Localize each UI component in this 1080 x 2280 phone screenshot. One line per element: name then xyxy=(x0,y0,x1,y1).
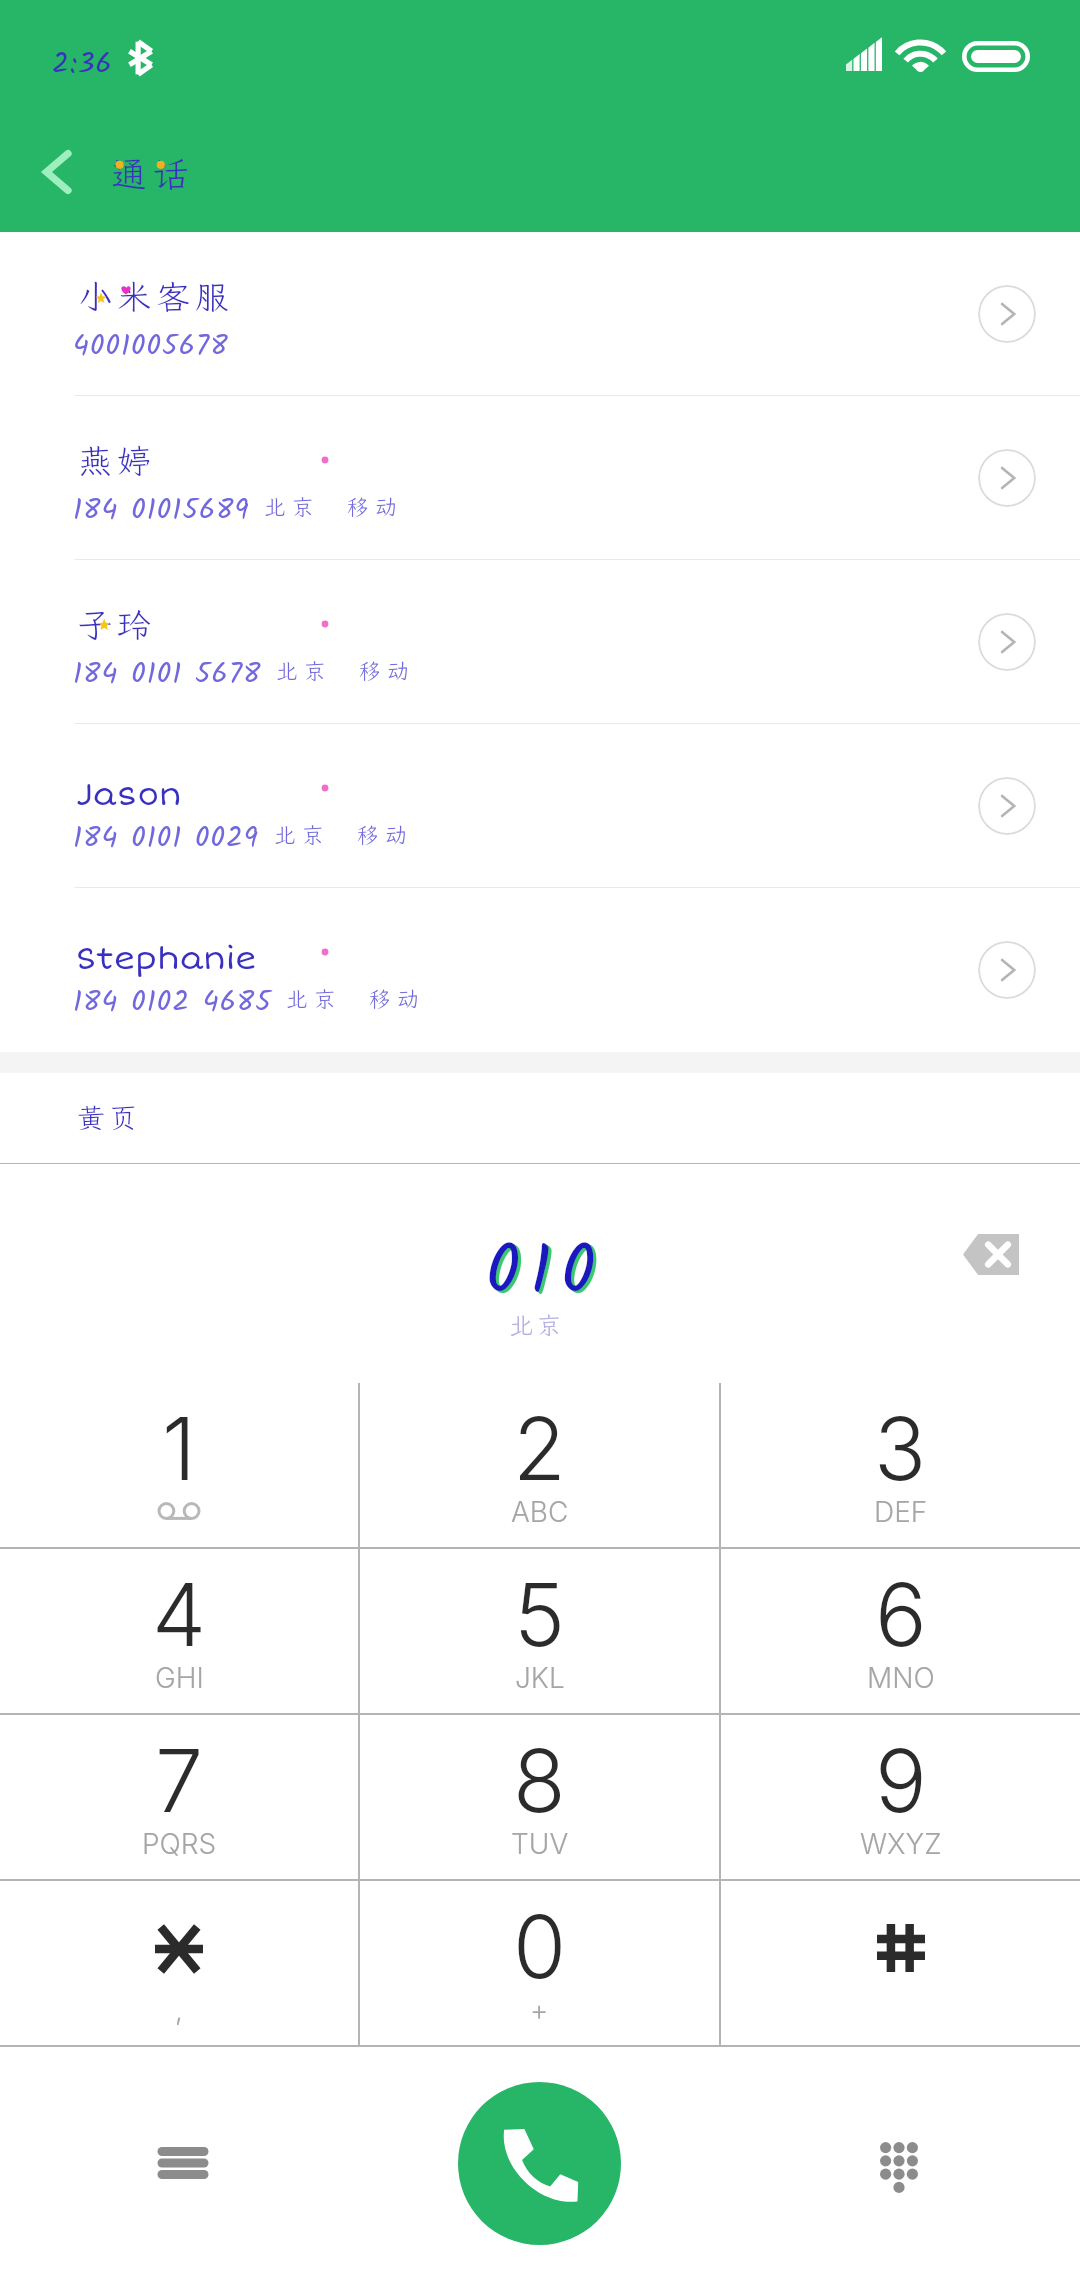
staticText: 6 xyxy=(875,1563,927,1667)
button[interactable]: 黄页 xyxy=(0,1073,1080,1163)
button[interactable]: 5 xyxy=(360,1549,719,1713)
staticText: 4001005678 xyxy=(73,324,229,370)
staticText: 北京 移动 xyxy=(272,984,426,1013)
button[interactable]: Contact details xyxy=(978,285,1036,343)
staticText: 2 xyxy=(513,1397,566,1501)
staticText: 184 01015689 xyxy=(73,488,250,534)
staticText: 010 xyxy=(489,1222,609,1330)
button[interactable]: Contact details xyxy=(978,777,1036,835)
staticText: 1 xyxy=(162,1397,196,1501)
button[interactable]: 2 xyxy=(360,1383,719,1547)
button[interactable]: 子玲 xyxy=(0,560,1080,724)
staticText: ABC xyxy=(511,1495,569,1529)
staticText: 8 xyxy=(513,1729,566,1833)
button[interactable]: Jason xyxy=(0,724,1080,888)
button[interactable] xyxy=(721,1881,1080,2045)
button[interactable]: , xyxy=(0,1881,358,2045)
staticText: 通话 xyxy=(111,150,194,197)
button[interactable]: 燕婷 xyxy=(0,396,1080,560)
staticText: 9 xyxy=(875,1729,927,1833)
staticText: MNO xyxy=(867,1661,935,1695)
staticText: 3 xyxy=(874,1397,927,1501)
staticText: GHI xyxy=(155,1661,204,1695)
button[interactable]: Delete xyxy=(945,1216,1037,1292)
staticText: 黄页 xyxy=(77,1099,142,1136)
staticText: 5 xyxy=(514,1563,566,1667)
button[interactable]: Call log xyxy=(120,2117,246,2209)
staticText: TUV xyxy=(511,1827,569,1861)
staticText: 010 xyxy=(486,1220,606,1328)
staticText: DEF xyxy=(874,1495,928,1529)
staticText: 北京 xyxy=(509,1309,565,1341)
staticText: JKL xyxy=(515,1661,565,1695)
staticText: 7 xyxy=(155,1729,204,1833)
staticText: 0 xyxy=(513,1895,567,1999)
button[interactable]: Contact details xyxy=(978,941,1036,999)
button[interactable]: Contact details xyxy=(978,613,1036,671)
staticText: 北京 移动 xyxy=(260,820,414,849)
staticText: + xyxy=(530,1993,549,2027)
staticText: , xyxy=(175,1993,183,2027)
button[interactable]: Contact details xyxy=(978,449,1036,507)
staticText: 184 0102 4685 xyxy=(73,980,272,1026)
button[interactable]: 1 xyxy=(0,1383,358,1547)
button[interactable]: 9 xyxy=(721,1715,1080,1879)
staticText: Jason xyxy=(76,775,182,814)
staticText: 2:36 xyxy=(52,42,113,88)
staticText: 184 0101 5678 xyxy=(73,652,262,698)
staticText: PQRS xyxy=(142,1827,217,1861)
button[interactable]: 7 xyxy=(0,1715,358,1879)
button[interactable]: Call xyxy=(458,2082,621,2245)
button[interactable]: 6 xyxy=(721,1549,1080,1713)
button[interactable]: 3 xyxy=(721,1383,1080,1547)
button[interactable]: 4 xyxy=(0,1549,358,1713)
staticText: 184 0101 0029 xyxy=(73,816,260,862)
staticText: 小米客服 xyxy=(78,274,234,319)
staticText: 子玲 xyxy=(78,602,156,647)
staticText: 北京 移动 xyxy=(262,656,416,685)
button[interactable]: 8 xyxy=(360,1715,719,1879)
staticText: WXYZ xyxy=(860,1827,942,1861)
staticText: 4 xyxy=(152,1563,207,1667)
button[interactable]: Keypad xyxy=(836,2121,962,2213)
staticText: 燕婷 xyxy=(78,438,156,483)
button[interactable]: 小米客服 xyxy=(0,232,1080,396)
button[interactable]: Stephanie xyxy=(0,888,1080,1052)
button[interactable]: 0 xyxy=(360,1881,719,2045)
staticText: Stephanie xyxy=(76,939,257,978)
button[interactable]: Back xyxy=(12,127,102,217)
staticText: 北京 移动 xyxy=(250,492,404,521)
